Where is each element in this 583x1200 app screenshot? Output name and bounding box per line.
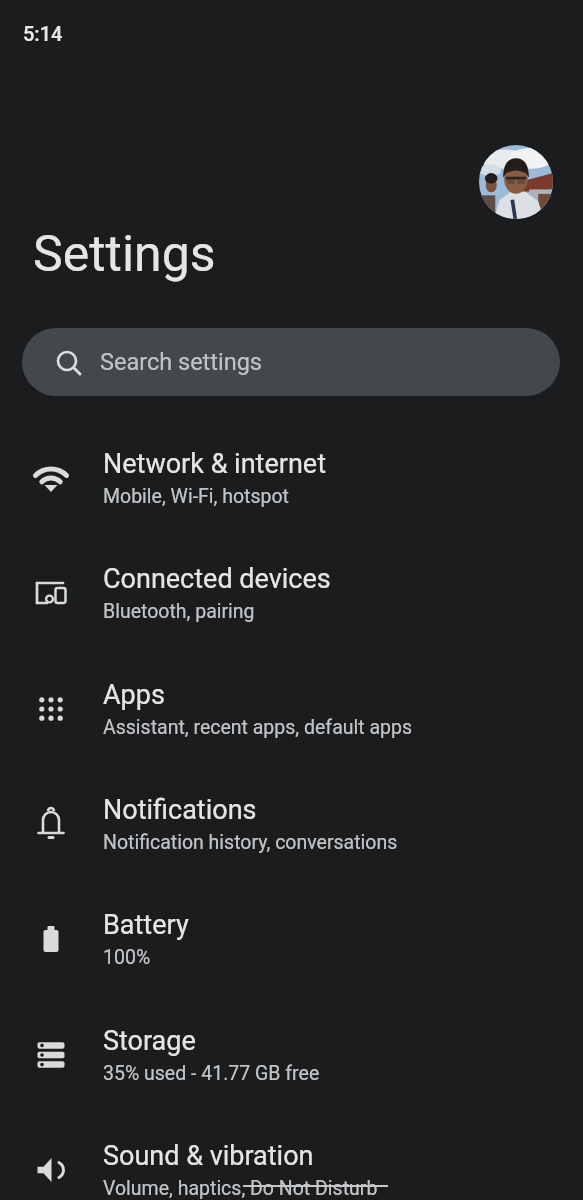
- staticText: 35% used - 41.77 GB free: [103, 1062, 320, 1085]
- button[interactable]: Sound & vibration: [0, 1099, 583, 1200]
- staticText: Mobile, Wi-Fi, hotspot: [103, 485, 289, 508]
- button[interactable]: Battery: [0, 868, 583, 983]
- staticText: Settings: [33, 225, 216, 284]
- staticText: 5:14: [23, 22, 63, 45]
- staticText: Connected devices: [103, 563, 331, 595]
- staticText: Assistant, recent apps, default apps: [103, 716, 413, 739]
- staticText: Bluetooth, pairing: [103, 600, 255, 623]
- staticText: Battery: [103, 909, 189, 941]
- button[interactable]: Apps: [0, 638, 583, 753]
- staticText: Storage: [103, 1025, 196, 1057]
- button[interactable]: [479, 145, 553, 219]
- staticText: Network & internet: [103, 448, 326, 480]
- staticText: Sound & vibration: [103, 1140, 314, 1172]
- staticText: Notifications: [103, 794, 257, 826]
- staticText: Search settings: [100, 348, 262, 376]
- staticText: Volume, haptics, Do Not Disturb: [103, 1177, 378, 1200]
- staticText: 100%: [103, 946, 151, 969]
- button[interactable]: Connected devices: [0, 522, 583, 637]
- button[interactable]: Network & internet: [0, 407, 583, 522]
- button[interactable]: Notifications: [0, 753, 583, 868]
- button[interactable]: Search settings: [22, 328, 560, 396]
- staticText: Apps: [103, 679, 165, 711]
- button[interactable]: Storage: [0, 984, 583, 1099]
- staticText: Notification history, conversations: [103, 831, 398, 854]
